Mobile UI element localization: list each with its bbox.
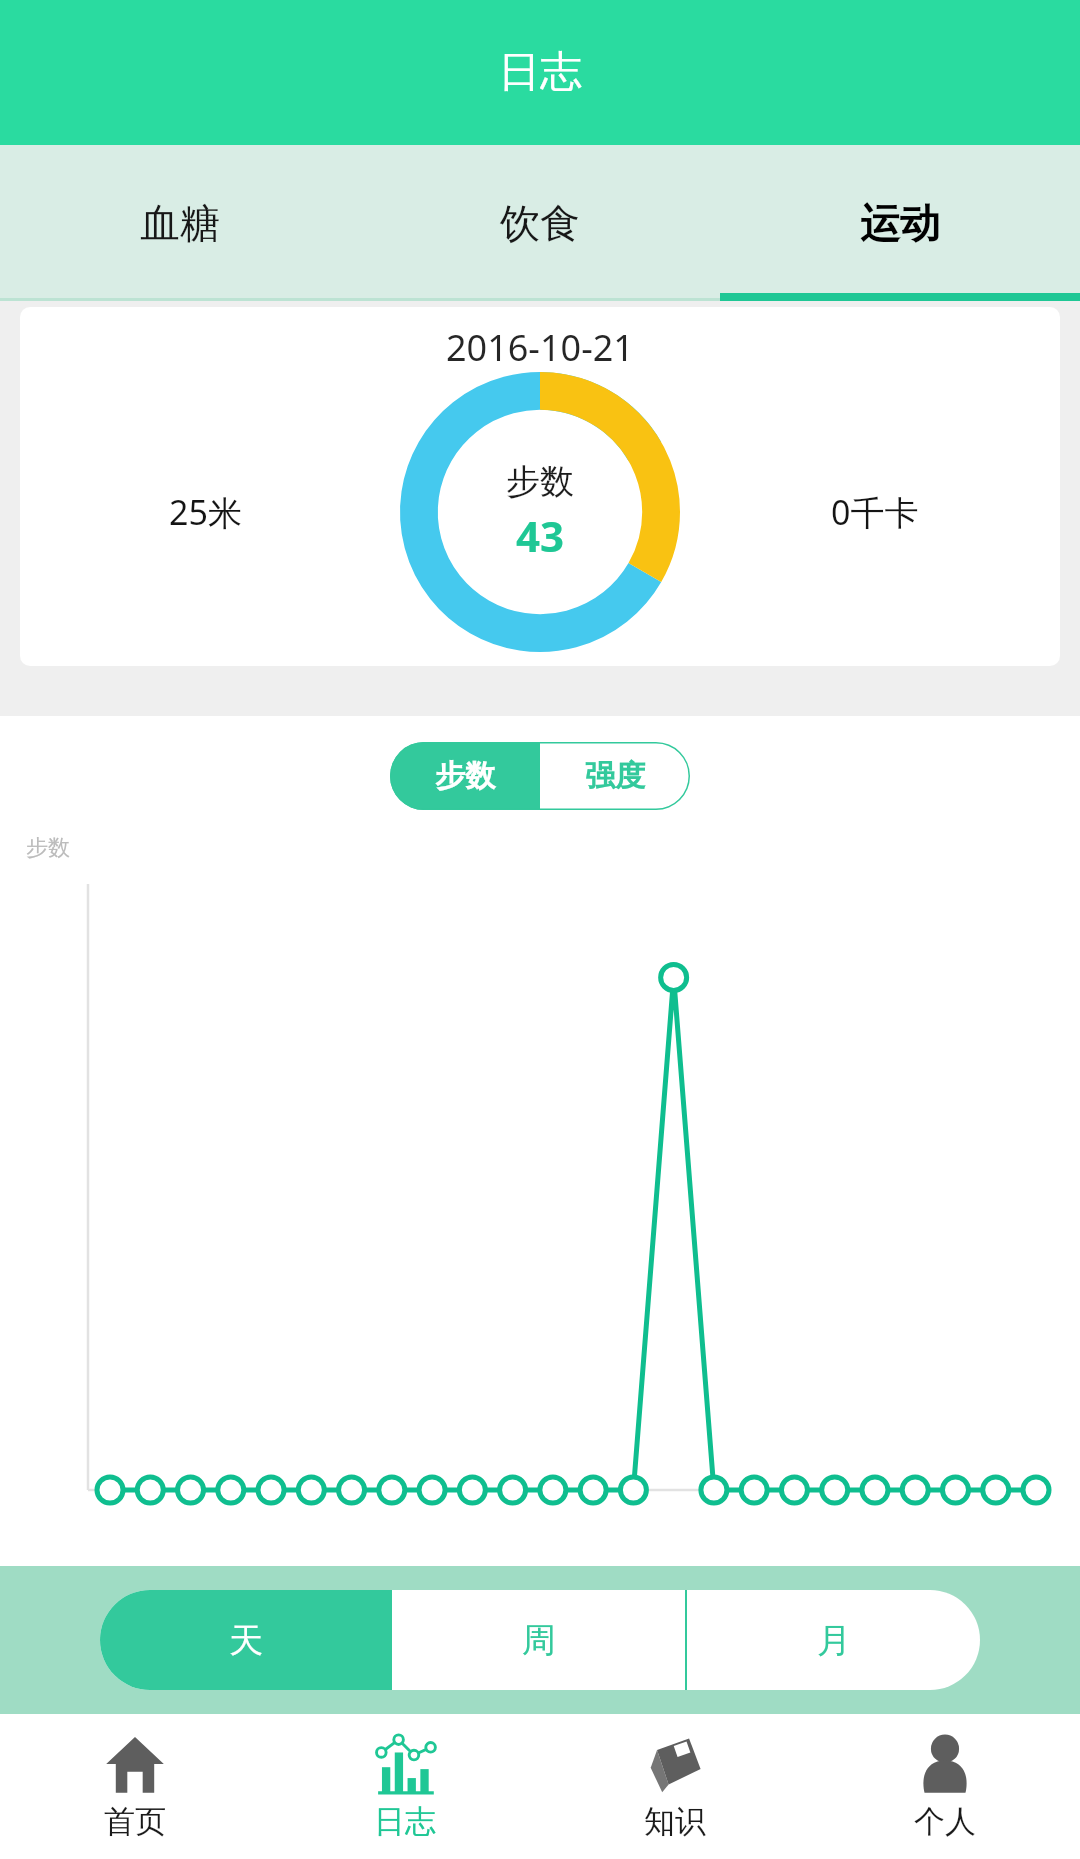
staticText: 运动 [860, 198, 940, 248]
staticText: 知识 [644, 1802, 706, 1841]
staticText: 日志 [498, 46, 582, 99]
button[interactable]: 饮食 [360, 145, 720, 301]
button[interactable]: 个人 [810, 1714, 1080, 1859]
staticText: 步数 [435, 757, 495, 795]
staticText: 月 [817, 1619, 851, 1662]
staticText: 首页 [104, 1802, 166, 1841]
staticText: 个人 [914, 1802, 976, 1841]
button[interactable]: 强度 [540, 742, 690, 810]
staticText: 周 [522, 1619, 556, 1662]
button[interactable]: 2016-10-21 [20, 307, 1060, 666]
staticText: 步数 [26, 834, 70, 862]
staticText: 0千卡 [831, 489, 919, 535]
staticText: 25米 [169, 489, 242, 535]
staticText: 强度 [585, 757, 645, 795]
staticText: 饮食 [500, 198, 580, 248]
button[interactable]: 首页 [0, 1714, 270, 1859]
button[interactable]: 周 [392, 1590, 685, 1690]
staticText: 步数 [506, 460, 574, 503]
button[interactable]: 日志 [270, 1714, 540, 1859]
button[interactable]: 知识 [540, 1714, 810, 1859]
button[interactable]: 月 [687, 1590, 980, 1690]
button[interactable]: 血糖 [0, 145, 360, 301]
button[interactable]: 天 [100, 1590, 392, 1690]
button[interactable]: 运动 [720, 145, 1080, 301]
staticText: 天 [229, 1619, 263, 1662]
staticText: 血糖 [140, 198, 220, 248]
button[interactable]: 步数 [390, 742, 540, 810]
staticText: 日志 [374, 1802, 436, 1841]
staticText: 2016-10-21 [446, 323, 634, 372]
staticText: 43 [516, 507, 565, 564]
